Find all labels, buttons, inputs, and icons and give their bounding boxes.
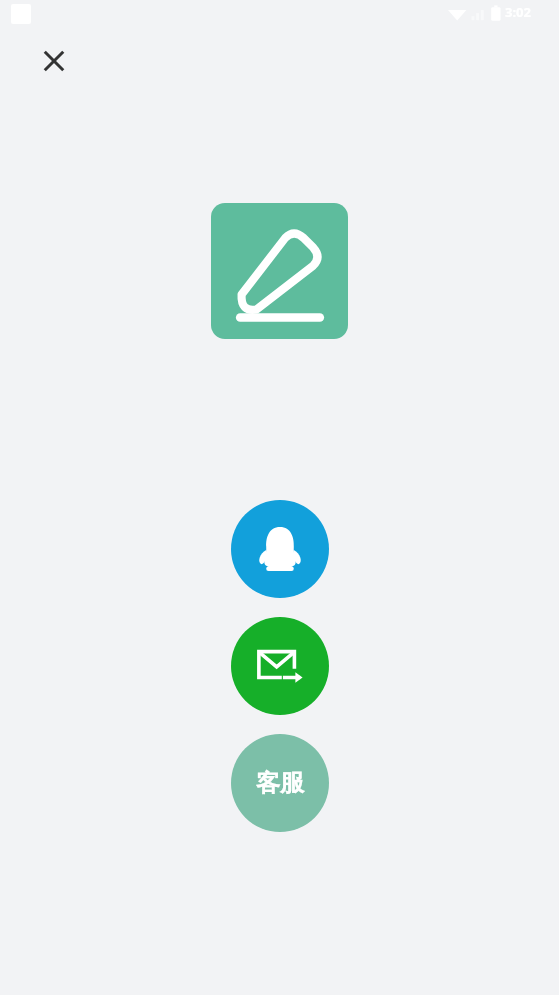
staticText: 3:02 [505, 3, 531, 21]
button[interactable]: Send email [231, 617, 329, 715]
button[interactable]: Close [32, 39, 76, 83]
button[interactable]: App logo [211, 203, 348, 339]
button[interactable]: 客服 [231, 734, 329, 832]
staticText: 客服 [256, 768, 304, 798]
button[interactable]: Contact via QQ [231, 500, 329, 598]
